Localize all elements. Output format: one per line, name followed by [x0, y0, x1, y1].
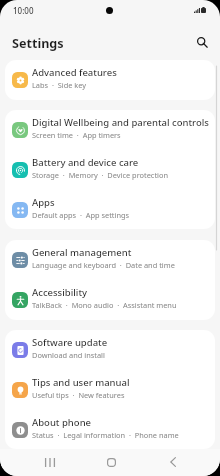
staticText: Settings: [12, 35, 64, 52]
staticText: Status · Legal information · Phone name: [32, 430, 179, 440]
staticText: Storage · Memory · Device protection: [32, 170, 169, 180]
staticText: About phone: [32, 416, 92, 429]
button[interactable]: Home: [91, 451, 131, 473]
button[interactable]: Battery and device care: [5, 150, 215, 190]
staticText: Download and install: [32, 350, 105, 360]
staticText: 10:00: [13, 5, 34, 16]
button[interactable]: Search: [189, 29, 215, 55]
staticText: Battery and device care: [32, 156, 139, 169]
staticText: Digital Wellbeing and parental controls: [32, 116, 209, 129]
staticText: Software update: [32, 336, 108, 349]
staticText: Screen time · App timers: [32, 130, 121, 140]
button[interactable]: Software update: [5, 330, 215, 370]
button[interactable]: Apps: [5, 190, 215, 229]
staticText: Advanced features: [32, 66, 117, 79]
staticText: Default apps · App settings: [32, 210, 130, 220]
button[interactable]: Accessibility: [5, 280, 215, 320]
staticText: Labs · Side key: [32, 80, 87, 90]
button[interactable]: General management: [5, 240, 215, 280]
button[interactable]: Tips and user manual: [5, 370, 215, 410]
staticText: Apps: [32, 196, 55, 209]
staticText: General management: [32, 246, 132, 259]
button[interactable]: Advanced features: [5, 60, 215, 100]
staticText: Useful tips · New features: [32, 390, 125, 400]
button[interactable]: Back: [153, 451, 193, 473]
button[interactable]: About phone: [5, 410, 215, 449]
staticText: Tips and user manual: [32, 376, 130, 389]
staticText: Accessibility: [32, 286, 88, 299]
staticText: Language and keyboard · Date and time: [32, 260, 175, 270]
button[interactable]: Recent apps: [30, 451, 70, 473]
button[interactable]: Digital Wellbeing and parental controls: [5, 110, 215, 150]
staticText: TalkBack · Mono audio · Assistant menu: [32, 300, 177, 310]
